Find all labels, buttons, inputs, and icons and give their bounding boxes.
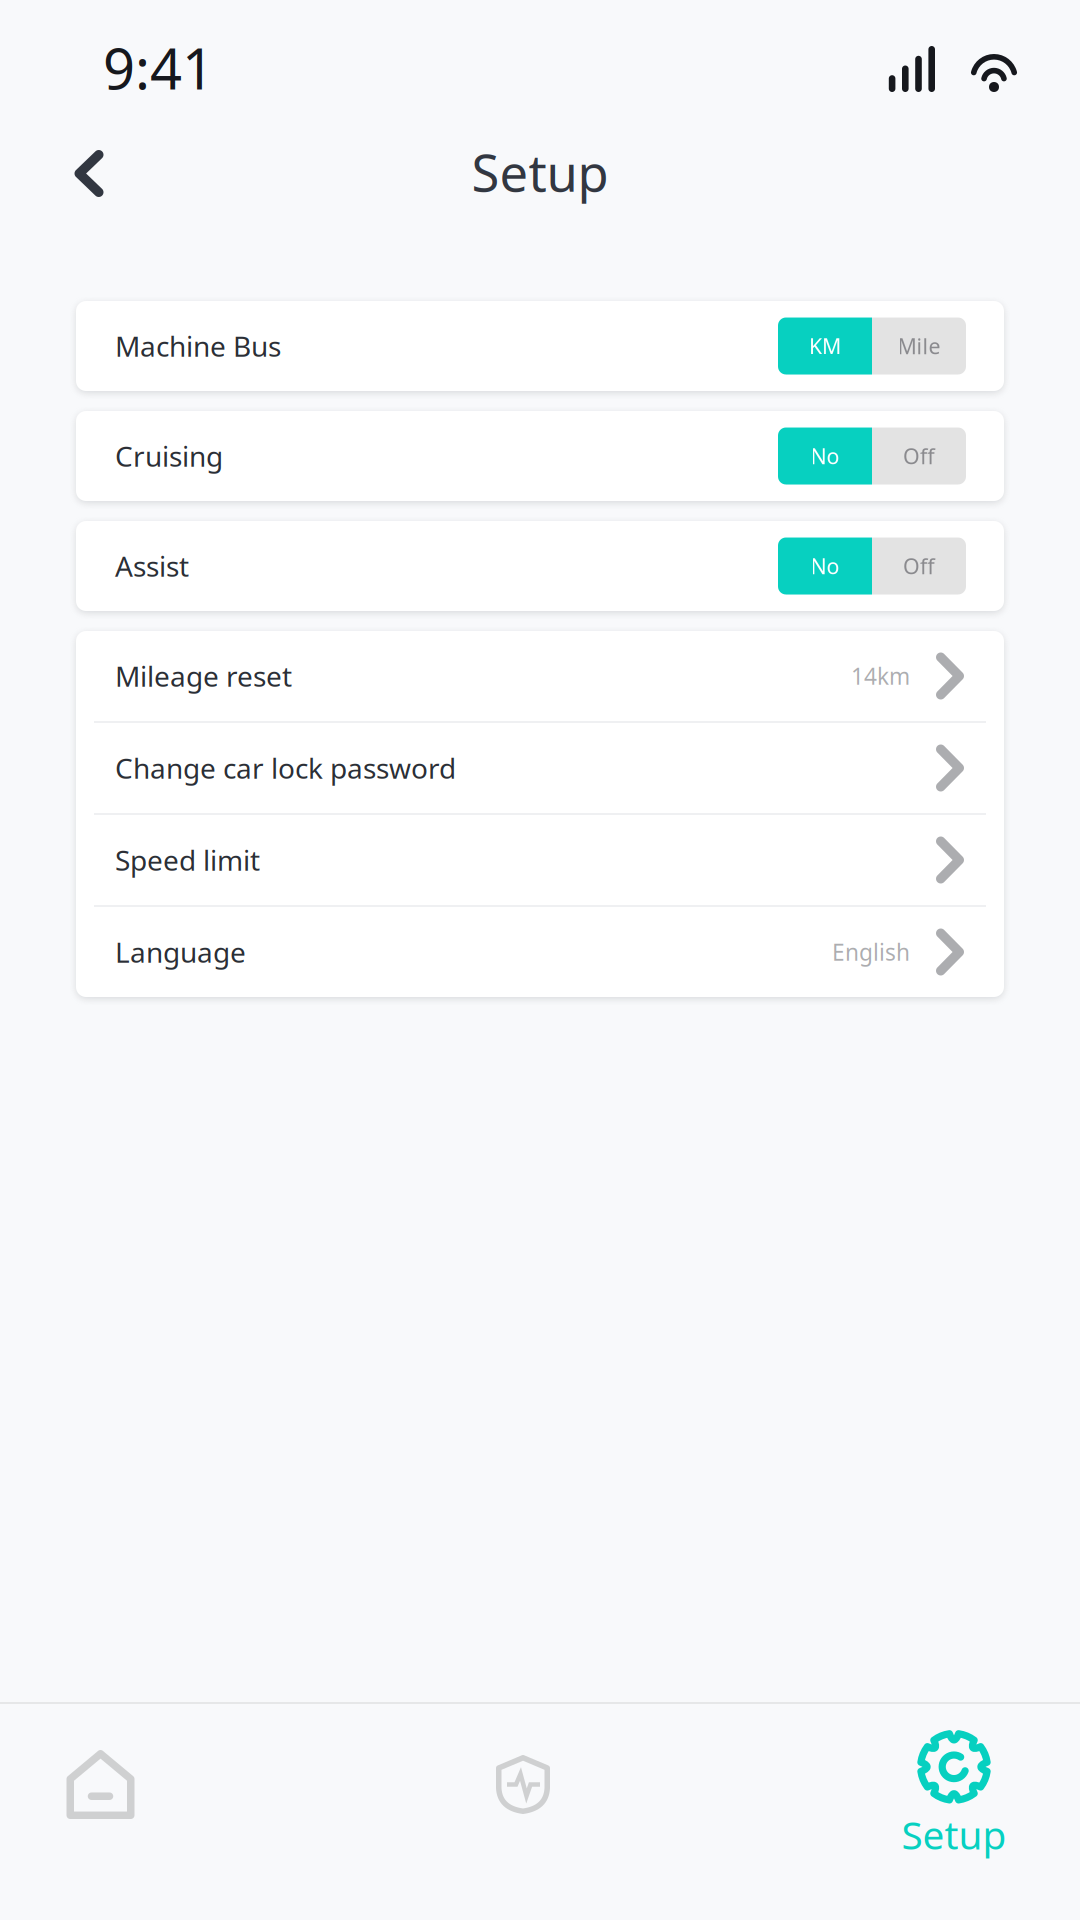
button[interactable]: Home: [0, 1704, 201, 1920]
staticText: Speed limit: [115, 841, 260, 879]
staticText: 9:41: [103, 31, 214, 105]
staticText: No: [810, 552, 839, 580]
button[interactable]: KM: [778, 317, 872, 374]
button[interactable]: Change car lock password: [76, 723, 1004, 813]
staticText: 14km: [851, 661, 910, 691]
button[interactable]: Speed limit: [76, 815, 1004, 905]
button[interactable]: Setup: [845, 1704, 1063, 1920]
button[interactable]: Back: [41, 127, 137, 219]
staticText: Mileage reset: [115, 657, 292, 695]
button[interactable]: Off: [872, 427, 966, 484]
staticText: Cruising: [115, 437, 223, 475]
button[interactable]: Mileage reset: [76, 631, 1004, 721]
staticText: No: [810, 442, 839, 470]
button[interactable]: Off: [872, 537, 966, 594]
staticText: KM: [809, 332, 841, 360]
button[interactable]: Security: [201, 1704, 845, 1920]
staticText: Setup: [471, 138, 608, 206]
staticText: Assist: [115, 547, 189, 585]
button[interactable]: No: [778, 427, 872, 484]
staticText: Change car lock password: [115, 749, 456, 787]
button[interactable]: Mile: [872, 317, 966, 374]
button[interactable]: No: [778, 537, 872, 594]
staticText: Language: [115, 933, 246, 971]
staticText: Off: [903, 442, 935, 470]
staticText: Machine Bus: [115, 327, 281, 365]
button[interactable]: Language: [76, 907, 1004, 997]
staticText: Mile: [897, 332, 940, 360]
staticText: English: [832, 937, 910, 967]
staticText: Off: [903, 552, 935, 580]
staticText: Setup: [901, 1809, 1006, 1860]
